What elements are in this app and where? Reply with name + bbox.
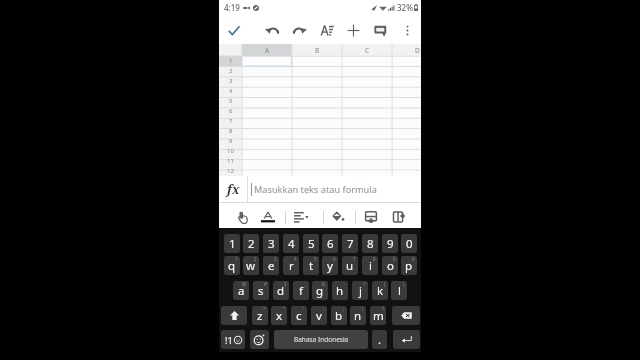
- staticText: l: [398, 283, 401, 299]
- button[interactable]: Masukkan teks atau formula: [248, 176, 421, 203]
- button[interactable]: 4: [283, 234, 299, 253]
- button[interactable]: l: [391, 281, 407, 300]
- staticText: 2: [229, 67, 233, 75]
- staticText: 0: [406, 236, 413, 252]
- button[interactable]: t: [303, 256, 319, 275]
- staticText: s: [258, 283, 264, 299]
- button[interactable]: g: [312, 281, 328, 300]
- staticText: 1: [229, 57, 233, 65]
- button[interactable]: n: [350, 306, 366, 325]
- button[interactable]: .: [372, 330, 387, 349]
- button[interactable]: u: [342, 256, 358, 275]
- button[interactable]: Insert: [341, 18, 365, 42]
- staticText: 3: [268, 236, 275, 252]
- button[interactable]: w: [243, 256, 259, 275]
- button[interactable]: Redo: [288, 18, 312, 42]
- staticText: v: [316, 308, 322, 324]
- button[interactable]: f: [293, 281, 309, 300]
- button[interactable]: Merge cells: [388, 206, 410, 228]
- staticText: 7: [353, 256, 356, 262]
- button[interactable]: Done: [222, 18, 246, 42]
- button[interactable]: Text alignment: [290, 206, 312, 228]
- button[interactable]: 0: [401, 234, 417, 253]
- staticText: 4:19: [224, 2, 240, 13]
- button[interactable]: q: [224, 256, 240, 275]
- button[interactable]: 9: [382, 234, 398, 253]
- staticText: _: [305, 281, 307, 287]
- button[interactable]: Enter: [393, 330, 420, 349]
- button[interactable]: p: [401, 256, 417, 275]
- button[interactable]: More options: [395, 18, 419, 42]
- staticText: 9: [387, 236, 394, 252]
- staticText: 0: [412, 256, 415, 262]
- button[interactable]: v: [311, 306, 327, 325]
- button[interactable]: d: [273, 281, 289, 300]
- staticText: 5: [229, 97, 233, 105]
- staticText: w: [246, 258, 256, 274]
- staticText: fx: [227, 181, 240, 198]
- staticText: k: [377, 283, 384, 299]
- staticText: ': [303, 306, 305, 312]
- button[interactable]: Symbols: [221, 330, 245, 349]
- staticText: !1: [225, 334, 233, 346]
- staticText: (: [384, 281, 386, 287]
- staticText: C: [365, 46, 370, 55]
- button[interactable]: 6: [322, 234, 338, 253]
- staticText: 5: [308, 236, 315, 252]
- button[interactable]: Comment: [368, 18, 392, 42]
- button[interactable]: k: [372, 281, 388, 300]
- button[interactable]: 7: [342, 234, 358, 253]
- button[interactable]: 1: [224, 234, 240, 253]
- button[interactable]: m: [370, 306, 386, 325]
- button[interactable]: z: [252, 306, 268, 325]
- staticText: c: [296, 308, 302, 324]
- button[interactable]: h: [332, 281, 348, 300]
- button[interactable]: Insert function: [219, 176, 247, 203]
- staticText: ?: [382, 306, 384, 312]
- button[interactable]: s: [253, 281, 269, 300]
- staticText: p: [405, 258, 413, 274]
- staticText: b: [335, 308, 343, 324]
- staticText: D: [415, 46, 420, 55]
- button[interactable]: Shift: [221, 306, 247, 325]
- button[interactable]: j: [352, 281, 368, 300]
- staticText: &: [322, 281, 326, 287]
- staticText: n: [354, 308, 362, 324]
- button[interactable]: e: [263, 256, 279, 275]
- button[interactable]: Bahasa Indonesia: [274, 330, 368, 349]
- staticText: x: [276, 308, 283, 324]
- button[interactable]: Paint format: [233, 206, 255, 228]
- button[interactable]: Text colour: [257, 206, 279, 228]
- button[interactable]: a: [233, 281, 249, 300]
- button[interactable]: 3: [263, 234, 279, 253]
- button[interactable]: o: [382, 256, 398, 275]
- staticText: 3: [274, 256, 277, 262]
- staticText: y: [327, 258, 333, 274]
- button[interactable]: r: [283, 256, 299, 275]
- staticText: $: [284, 281, 287, 287]
- staticText: 3: [229, 77, 233, 85]
- button[interactable]: 2: [243, 234, 259, 253]
- button[interactable]: b: [331, 306, 347, 325]
- button[interactable]: x: [271, 306, 287, 325]
- button[interactable]: c: [291, 306, 307, 325]
- button[interactable]: y: [322, 256, 338, 275]
- button[interactable]: 5: [303, 234, 319, 253]
- button[interactable]: i: [362, 256, 378, 275]
- staticText: r: [289, 258, 294, 274]
- button[interactable]: Emoji: [250, 330, 269, 349]
- staticText: 6: [333, 256, 336, 262]
- staticText: q: [228, 258, 236, 274]
- staticText: !: [362, 306, 364, 312]
- staticText: 7: [229, 117, 233, 125]
- button[interactable]: Borders: [360, 206, 382, 228]
- button[interactable]: Undo: [260, 18, 284, 42]
- button[interactable]: Text formatting: [315, 18, 339, 42]
- staticText: 4: [288, 236, 295, 252]
- staticText: f: [299, 283, 303, 299]
- button[interactable]: 8: [362, 234, 378, 253]
- staticText: 11: [227, 157, 234, 165]
- button[interactable]: Fill colour: [327, 206, 349, 228]
- button[interactable]: Backspace: [392, 306, 420, 325]
- staticText: ;: [343, 306, 345, 312]
